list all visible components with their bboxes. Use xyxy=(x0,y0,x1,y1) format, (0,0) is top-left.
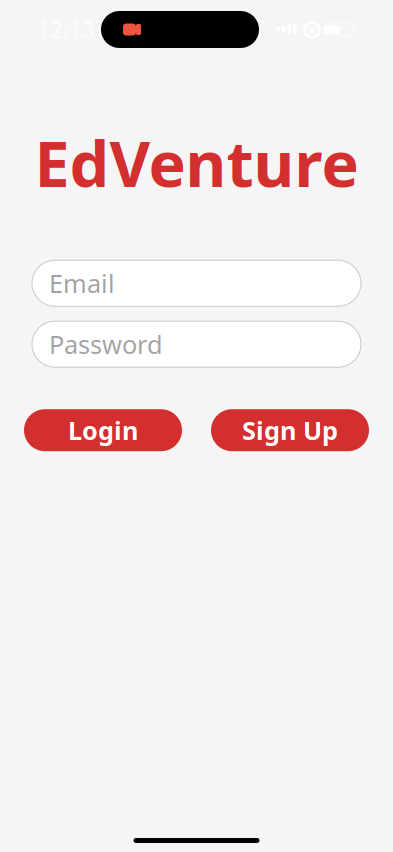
button[interactable]: Sign Up xyxy=(211,409,369,451)
button[interactable]: Password xyxy=(32,321,361,367)
staticText: Sign Up xyxy=(242,413,338,447)
button[interactable]: Login xyxy=(24,409,182,451)
button[interactable]: Email xyxy=(32,260,361,306)
staticText: EdVenture xyxy=(34,121,358,204)
staticText: Email xyxy=(49,266,115,300)
staticText: Login xyxy=(68,413,138,447)
staticText: Password xyxy=(49,327,163,361)
